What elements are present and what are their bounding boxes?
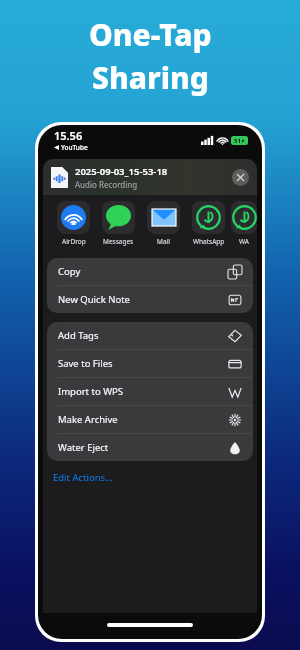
staticText: Copy <box>58 265 228 278</box>
staticText: Edit Actions... <box>53 471 113 484</box>
staticText: WhatsApp <box>193 237 225 246</box>
button[interactable]: AirDrop <box>51 201 96 246</box>
staticText: Import to WPS <box>58 385 228 398</box>
staticText: YouTube <box>61 143 88 152</box>
button[interactable]: Messages <box>96 201 141 246</box>
button[interactable]: WA <box>231 201 257 246</box>
button[interactable]: Save to Files <box>47 350 253 377</box>
staticText: Add Tags <box>58 329 228 342</box>
button[interactable]: New Quick Note <box>47 286 253 313</box>
staticText: One-Tap <box>89 14 212 55</box>
staticText: Make Archive <box>58 413 228 426</box>
button[interactable]: Edit Actions... <box>43 461 257 493</box>
staticText: Audio Recording <box>75 179 138 190</box>
staticText: 15.56 <box>54 128 83 143</box>
button[interactable]: WhatsApp <box>186 201 231 246</box>
staticText: AirDrop <box>62 237 86 246</box>
button[interactable]: Mail <box>141 201 186 246</box>
button[interactable]: Close <box>232 169 249 186</box>
button[interactable]: Make Archive <box>47 406 253 433</box>
staticText: Messages <box>103 237 134 246</box>
staticText: Sharing <box>92 57 209 98</box>
button[interactable]: Import to WPS <box>47 378 253 405</box>
staticText: Save to Files <box>58 357 228 370</box>
staticText: New Quick Note <box>58 293 228 306</box>
button[interactable]: Copy <box>47 258 253 285</box>
staticText: 2025-09-03_15-53-18 <box>75 165 168 178</box>
button[interactable]: 2025-09-03_15-53-18 <box>43 159 257 195</box>
button[interactable]: Add Tags <box>47 322 253 349</box>
button[interactable]: Water Eject <box>47 434 253 461</box>
staticText: Mail <box>157 237 170 246</box>
staticText: WA <box>239 237 249 246</box>
staticText: Water Eject <box>58 441 228 454</box>
staticText: 51 <box>234 137 241 145</box>
